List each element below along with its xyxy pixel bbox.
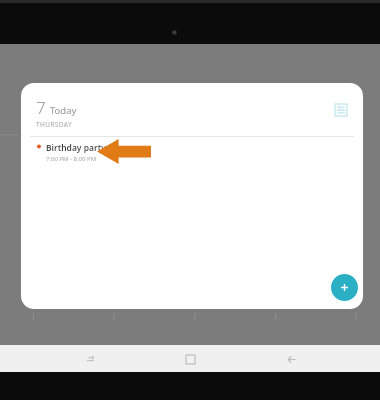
button[interactable]: Switch view bbox=[330, 99, 352, 121]
staticText: 7:00 PM - 8:00 PM bbox=[46, 155, 97, 163]
button[interactable]: Birthday party bbox=[21, 137, 363, 167]
button[interactable]: Home bbox=[179, 348, 201, 370]
staticText: Birthday party bbox=[46, 142, 106, 154]
staticText: THURSDAY bbox=[36, 120, 73, 129]
staticText: Today bbox=[50, 104, 77, 117]
button[interactable]: Create event bbox=[331, 274, 358, 301]
staticText: 7 bbox=[36, 96, 46, 119]
button[interactable]: Back bbox=[280, 348, 302, 370]
button[interactable]: Recent apps bbox=[79, 348, 101, 370]
